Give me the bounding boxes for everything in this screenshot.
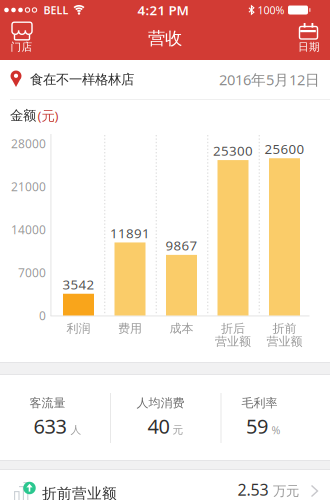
staticText: 人 [70,423,81,436]
staticText: 毛利率 [241,396,277,410]
staticText: 28000 [11,135,46,151]
button[interactable]: 日期 [286,20,330,58]
staticText: 59 [246,413,268,439]
staticText: 7000 [18,264,46,280]
staticText: 成本 [169,321,193,336]
staticText: 利润 [66,321,90,336]
staticText: 2.53 [237,479,268,500]
staticText: 2016年5月12日 [219,70,320,89]
staticText: 金额 [10,107,36,124]
staticText: 折前 [272,321,296,336]
staticText: 营业额 [215,334,251,349]
staticText: 万元 [273,483,299,499]
staticText: 费用 [118,321,142,336]
staticText: 11891 [110,224,150,242]
staticText: 人均消费 [136,396,184,410]
staticText: 元 [172,423,183,436]
staticText: 门店 [10,40,32,53]
staticText: 0 [39,307,46,323]
staticText: 4:21 PM [137,1,188,19]
staticText: 日期 [298,40,320,53]
staticText: % [271,423,280,437]
staticText: 折后 [221,321,245,336]
staticText: 100% [257,3,284,17]
button[interactable]: 折前营业额 [0,470,330,500]
staticText: (元) [37,107,58,124]
staticText: 3542 [62,275,94,293]
staticText: 食在不一样格林店 [30,71,134,88]
button[interactable]: 食在不一样格林店 [0,60,330,100]
staticText: 25600 [264,140,304,158]
staticText: 营业额 [266,334,302,349]
staticText: 25300 [213,142,253,159]
staticText: 营收 [148,28,182,49]
staticText: 633 [33,413,66,439]
staticText: 客流量 [29,396,65,410]
button[interactable]: 门店 [0,20,44,58]
staticText: 14000 [11,221,46,237]
staticText: 9867 [165,236,197,254]
staticText: 21000 [11,178,46,194]
staticText: 40 [147,413,169,439]
staticText: 折前营业额 [42,484,117,500]
staticText: BELL [43,3,68,17]
